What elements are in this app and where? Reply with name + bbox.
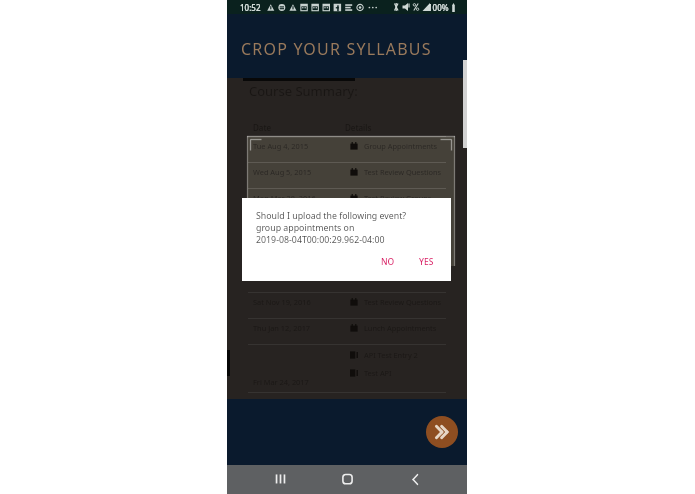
button[interactable]: YES bbox=[411, 252, 442, 272]
button[interactable]: Recents bbox=[265, 465, 295, 494]
button[interactable]: Sat Nov 19, 2016 bbox=[227, 292, 467, 318]
staticText: Group Appointments bbox=[364, 219, 438, 229]
staticText: Details bbox=[345, 122, 372, 133]
button[interactable]: Thu Jun 2, 2016 bbox=[227, 214, 467, 240]
button[interactable]: Back bbox=[400, 465, 430, 494]
button[interactable]: NO bbox=[373, 252, 403, 272]
staticText: 10:52 bbox=[240, 2, 261, 13]
button[interactable]: Wed Oct 5, 2016 bbox=[227, 266, 467, 292]
staticText: CROP YOUR SYLLABUS bbox=[241, 38, 432, 60]
button[interactable]: API Test Entry 2 bbox=[227, 344, 467, 392]
button[interactable]: Home bbox=[332, 465, 362, 494]
staticText: 100% bbox=[428, 2, 449, 13]
staticText: NO bbox=[381, 256, 395, 268]
staticText: Test Review Groups bbox=[364, 193, 432, 203]
staticText: Test Review Questions bbox=[364, 167, 442, 177]
button[interactable]: Mon Mar 28, 2016 bbox=[227, 188, 467, 214]
button[interactable]: Wed Aug 5, 2015 bbox=[227, 162, 467, 188]
staticText: Thu Jun 2, 2016 bbox=[253, 219, 307, 229]
button[interactable]: Next bbox=[426, 416, 458, 448]
staticText: Course Summary: bbox=[249, 82, 358, 100]
staticText: Date bbox=[253, 122, 272, 133]
staticText: Should I upload the following event? gro… bbox=[256, 210, 407, 246]
staticText: Test API bbox=[364, 368, 392, 378]
staticText: Wed Aug 5, 2015 bbox=[253, 167, 312, 177]
staticText: Mon Mar 28, 2016 bbox=[253, 193, 316, 203]
staticText: YES bbox=[419, 256, 434, 268]
staticText: Tue Aug 4, 2015 bbox=[253, 141, 309, 151]
button[interactable]: Sat Aug 20, 2016 bbox=[227, 240, 467, 266]
button[interactable]: Tue Aug 4, 2015 bbox=[227, 136, 467, 162]
button[interactable]: Thu Jan 12, 2017 bbox=[227, 318, 467, 344]
staticText: Group Appointments bbox=[364, 141, 438, 151]
